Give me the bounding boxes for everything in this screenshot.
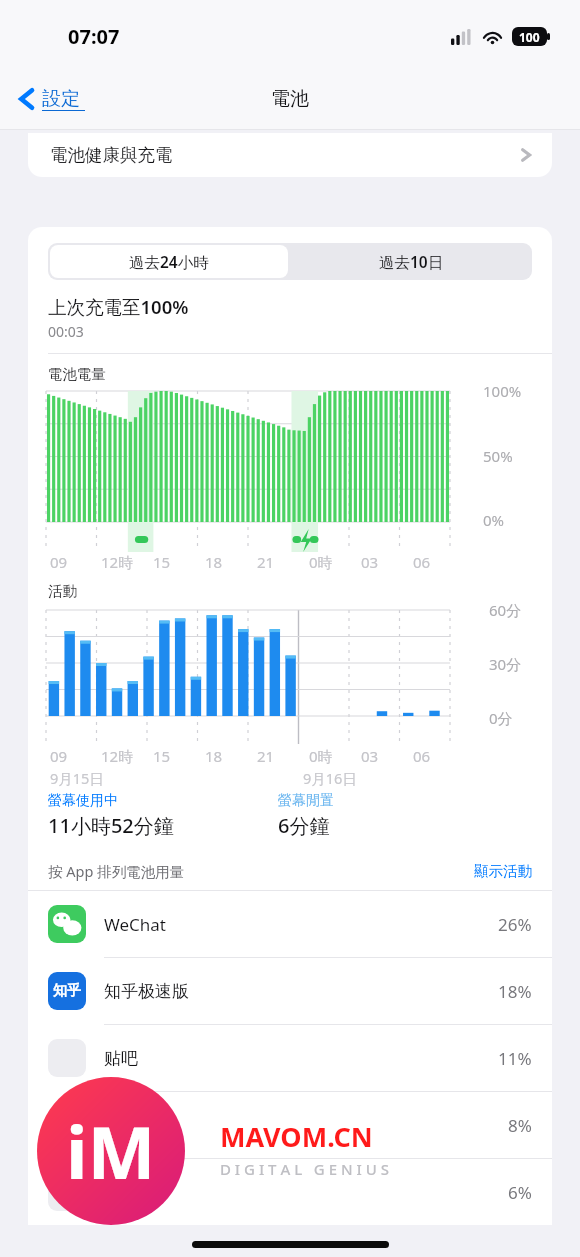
staticText: WeChat	[104, 913, 166, 936]
staticText: 電池健康與充電	[50, 144, 173, 166]
staticText: 電池	[271, 87, 309, 111]
staticText: 0時	[309, 746, 333, 766]
staticText: 03	[361, 746, 379, 766]
staticText: 贴吧	[104, 1048, 138, 1069]
staticText: 9月16日	[303, 768, 357, 788]
staticText: 60分	[489, 600, 522, 620]
staticText: 00:03	[48, 322, 84, 341]
button[interactable]: 電池健康與充電	[28, 133, 552, 177]
staticText: 03	[361, 552, 379, 572]
staticText: 顯示活動	[474, 862, 532, 880]
staticText: D I G I T A L G E N I U S	[220, 1159, 389, 1179]
button[interactable]: 過去10日	[290, 243, 532, 280]
button[interactable]: 哔哩哔哩	[28, 1159, 552, 1225]
staticText: 過去10日	[379, 251, 444, 272]
staticText: 過去24小時	[129, 251, 209, 272]
staticText: 0時	[309, 552, 333, 572]
staticText: 21	[257, 746, 275, 766]
staticText: 0%	[483, 510, 505, 530]
staticText: 螢幕閒置	[278, 792, 334, 810]
staticText: MAVOM.CN	[220, 1118, 373, 1155]
button[interactable]: 8%	[28, 1092, 552, 1158]
staticText: 30分	[489, 654, 522, 674]
staticText: 15	[153, 552, 171, 572]
staticText: 知乎	[53, 982, 81, 1000]
staticText: 11%	[498, 1047, 532, 1070]
button[interactable]: 設定	[18, 86, 85, 112]
staticText: 11小時52分鐘	[48, 812, 174, 839]
staticText: 21	[257, 552, 275, 572]
staticText: 09	[50, 552, 68, 572]
staticText: 6分鐘	[278, 812, 330, 839]
staticText: 06	[413, 552, 431, 572]
staticText: 9月15日	[50, 768, 104, 788]
staticText: 按 App 排列電池用量	[48, 861, 185, 881]
staticText: 上次充電至100%	[48, 294, 189, 319]
staticText: 100	[519, 29, 540, 45]
staticText: 06	[413, 746, 431, 766]
staticText: 09	[50, 746, 68, 766]
staticText: 07:07	[68, 23, 120, 50]
button[interactable]: 顯示活動	[474, 862, 532, 880]
staticText: 0分	[489, 708, 513, 728]
staticText: 6%	[508, 1181, 532, 1204]
button[interactable]: 過去24小時	[50, 245, 288, 278]
staticText: 螢幕使用中	[48, 792, 118, 810]
staticText: 50%	[483, 446, 513, 466]
staticText: 設定	[42, 87, 80, 111]
staticText: 知乎极速版	[104, 981, 189, 1002]
staticText: 18	[205, 552, 223, 572]
staticText: 電池電量	[48, 365, 106, 383]
button[interactable]: WeChat	[28, 891, 552, 957]
staticText: 15	[153, 746, 171, 766]
staticText: 8%	[508, 1114, 532, 1137]
button[interactable]: 知乎	[28, 958, 552, 1024]
staticText: 哔哩哔哩	[104, 1173, 172, 1194]
staticText: 26%	[498, 913, 532, 936]
staticText: 18%	[498, 980, 532, 1003]
button[interactable]: 贴吧	[28, 1025, 552, 1091]
staticText: 活動	[48, 582, 77, 600]
staticText: 12時	[101, 552, 134, 572]
staticText: 100%	[483, 381, 522, 401]
staticText: 12時	[101, 746, 134, 766]
staticText: iM	[66, 1102, 156, 1200]
staticText: 18	[205, 746, 223, 766]
